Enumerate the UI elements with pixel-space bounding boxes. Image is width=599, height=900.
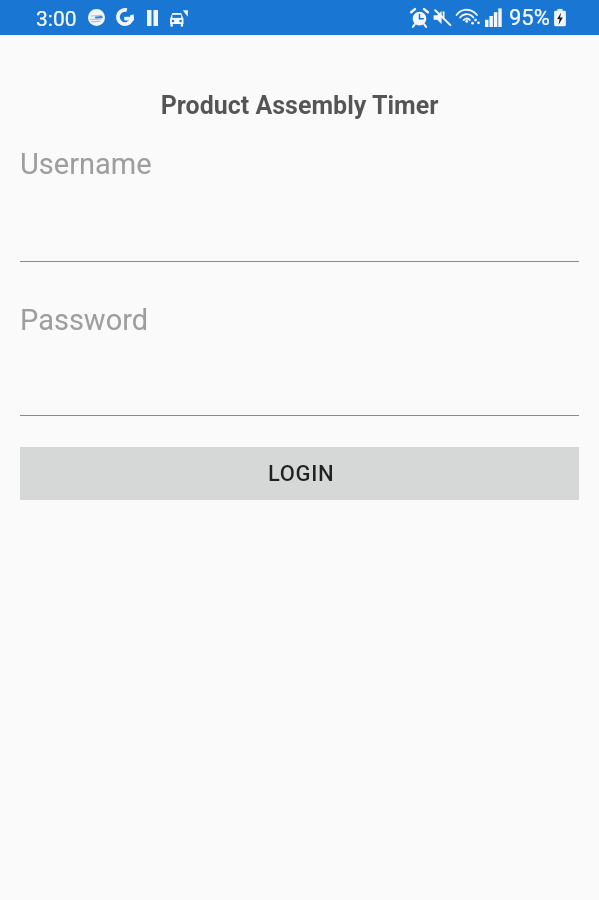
button[interactable]: LOGIN [20,447,579,500]
other: Android Auto [169,8,190,27]
staticText: 3:00 [36,7,77,32]
other: Sound muted [432,8,452,27]
staticText: Username [20,147,152,181]
staticText: LOGIN [268,461,335,487]
other: Notification [88,9,105,26]
other: Media paused [147,10,158,26]
other: Mobile signal [485,8,502,27]
button[interactable]: Username [20,140,579,262]
staticText: Product Assembly Timer [0,91,599,120]
button[interactable]: Password [20,296,579,416]
other: Google [116,7,134,27]
other: Wi-Fi [456,6,481,26]
staticText: Password [20,303,149,337]
staticText: 95% [509,5,550,31]
other: Alarm set [410,8,429,27]
other: Battery charging [553,8,567,27]
